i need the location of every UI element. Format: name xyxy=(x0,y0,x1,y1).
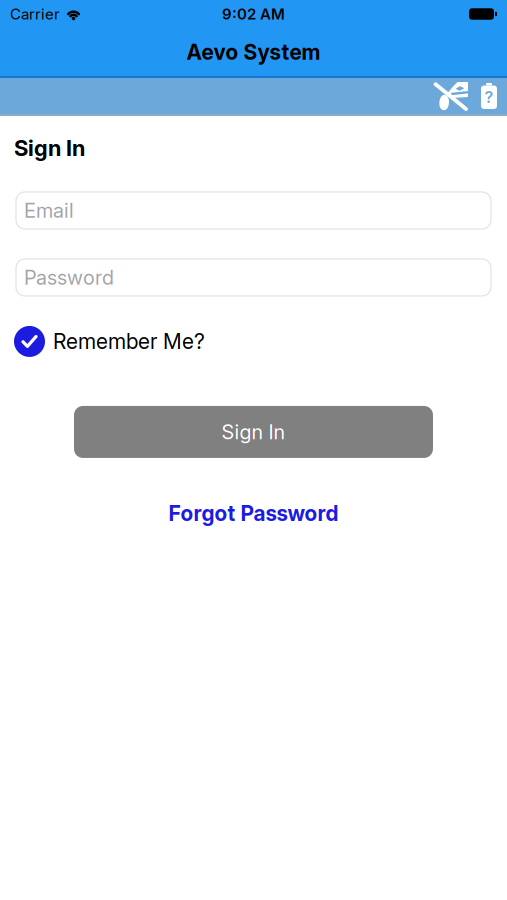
staticText: Sign In xyxy=(14,135,85,161)
staticText: Aevo System xyxy=(186,40,320,64)
staticText: Forgot Password xyxy=(168,501,338,526)
staticText: ? xyxy=(484,88,493,107)
staticText: Carrier xyxy=(10,5,60,23)
staticText: Sign In xyxy=(221,420,285,444)
staticText: Password xyxy=(24,266,114,289)
staticText: Remember Me? xyxy=(53,329,205,354)
staticText: Email xyxy=(24,199,74,222)
staticText: 9:02 AM xyxy=(222,5,285,23)
